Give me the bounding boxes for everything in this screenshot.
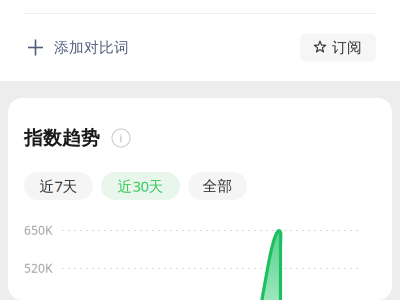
staticText: 520K — [24, 260, 52, 276]
button[interactable]: 近30天 — [101, 172, 180, 200]
staticText: 指数趋势 — [24, 126, 100, 149]
button[interactable]: 全部 — [188, 172, 247, 200]
staticText: 添加对比词 — [54, 38, 129, 56]
button[interactable]: 订阅 — [300, 33, 376, 61]
staticText: 650K — [24, 222, 52, 238]
staticText: 近7天 — [39, 176, 77, 196]
staticText: i — [119, 131, 122, 145]
staticText: 全部 — [202, 177, 232, 195]
staticText: 近30天 — [117, 176, 163, 196]
button[interactable]: 添加对比词 — [0, 23, 137, 71]
staticText: 订阅 — [332, 38, 362, 56]
button[interactable]: 近7天 — [24, 172, 93, 200]
